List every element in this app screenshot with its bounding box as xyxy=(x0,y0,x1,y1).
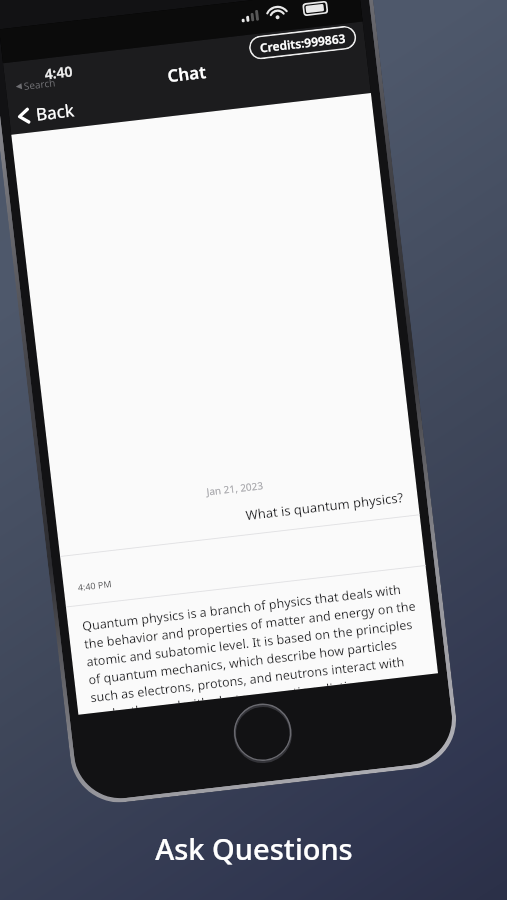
button[interactable]: Quantum physics is a branch of physics t… xyxy=(67,578,438,715)
staticText: Quantum physics is a branch of physics t… xyxy=(81,579,424,713)
button[interactable]: Credits 999863 xyxy=(248,24,358,61)
staticText: Jan 21, 2023 xyxy=(206,478,264,499)
staticText: 4:40 xyxy=(43,61,73,83)
staticText: Ask Questions xyxy=(155,829,353,868)
staticText: Chat xyxy=(166,60,208,87)
staticText: Search xyxy=(23,75,56,93)
staticText: Credits:999863 xyxy=(259,30,346,55)
staticText: Back xyxy=(35,98,75,126)
staticText: What is quantum physics? xyxy=(245,488,405,524)
staticText: 4:40 PM xyxy=(77,577,112,593)
button[interactable]: Back xyxy=(7,93,88,135)
button[interactable]: What is quantum physics? xyxy=(57,484,419,548)
